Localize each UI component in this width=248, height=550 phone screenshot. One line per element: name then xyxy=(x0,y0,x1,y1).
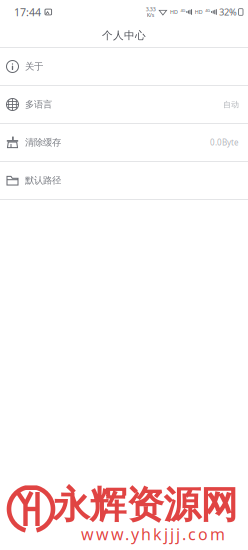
staticText: 自动 xyxy=(223,100,239,109)
staticText: 0.0Byte xyxy=(210,137,239,148)
staticText: www.yhkjjj.com xyxy=(81,523,225,545)
staticText: K/s xyxy=(147,11,155,18)
staticText: 默认路径 xyxy=(25,175,61,186)
staticText: 多语言 xyxy=(25,99,52,110)
staticText: 4G xyxy=(205,8,210,13)
button[interactable]: 清除缓存 xyxy=(0,124,248,162)
button[interactable]: 默认路径 xyxy=(0,162,248,200)
staticText: 关于 xyxy=(25,61,43,72)
staticText: 个人中心 xyxy=(102,29,146,42)
staticText: 17:44 xyxy=(14,5,41,19)
staticText: 32% xyxy=(219,6,237,18)
staticText: 清除缓存 xyxy=(25,137,61,148)
staticText: 3.33 xyxy=(146,5,156,13)
staticText: 4G xyxy=(180,8,185,13)
staticText: HD xyxy=(195,8,203,16)
button[interactable]: 关于 xyxy=(0,48,248,86)
staticText: 永辉资源网 xyxy=(52,482,237,528)
button[interactable]: 多语言 xyxy=(0,86,248,124)
staticText: HD xyxy=(170,8,178,16)
